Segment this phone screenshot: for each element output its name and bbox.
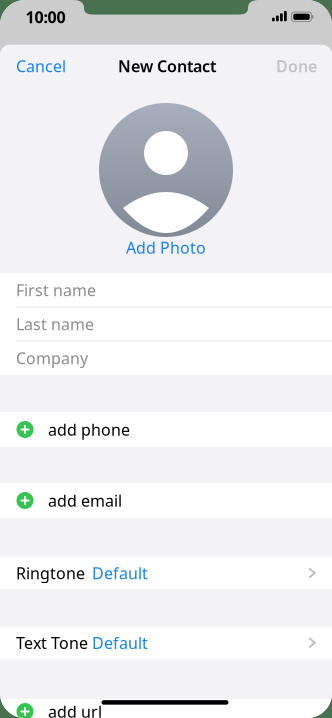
staticText: Text Tone: [16, 632, 88, 653]
staticText: New Contact: [118, 55, 216, 77]
button[interactable]: Done: [237, 55, 317, 77]
staticText: Last name: [16, 313, 94, 335]
button[interactable]: Last name: [0, 307, 332, 341]
button[interactable]: First name: [0, 273, 332, 307]
staticText: 10:00: [25, 6, 65, 28]
staticText: add email: [48, 490, 122, 511]
staticText: Done: [276, 55, 317, 77]
button[interactable]: Cancel: [16, 55, 96, 77]
staticText: Ringtone: [16, 562, 85, 584]
button[interactable]: add url: [0, 699, 332, 718]
staticText: add phone: [48, 419, 130, 440]
button[interactable]: Add Photo: [126, 237, 206, 258]
staticText: Company: [16, 347, 88, 369]
button[interactable]: add phone: [0, 412, 332, 447]
button[interactable]: Text Tone: [0, 626, 332, 659]
button[interactable]: Ringtone: [0, 557, 332, 589]
button[interactable]: Company: [0, 341, 332, 375]
staticText: Default: [92, 632, 148, 653]
staticText: add url: [48, 701, 102, 718]
staticText: Add Photo: [126, 237, 206, 258]
staticText: First name: [16, 279, 96, 301]
button[interactable]: Add Photo: [99, 103, 233, 237]
button[interactable]: add email: [0, 483, 332, 518]
staticText: Cancel: [16, 55, 66, 77]
staticText: Default: [92, 562, 148, 584]
